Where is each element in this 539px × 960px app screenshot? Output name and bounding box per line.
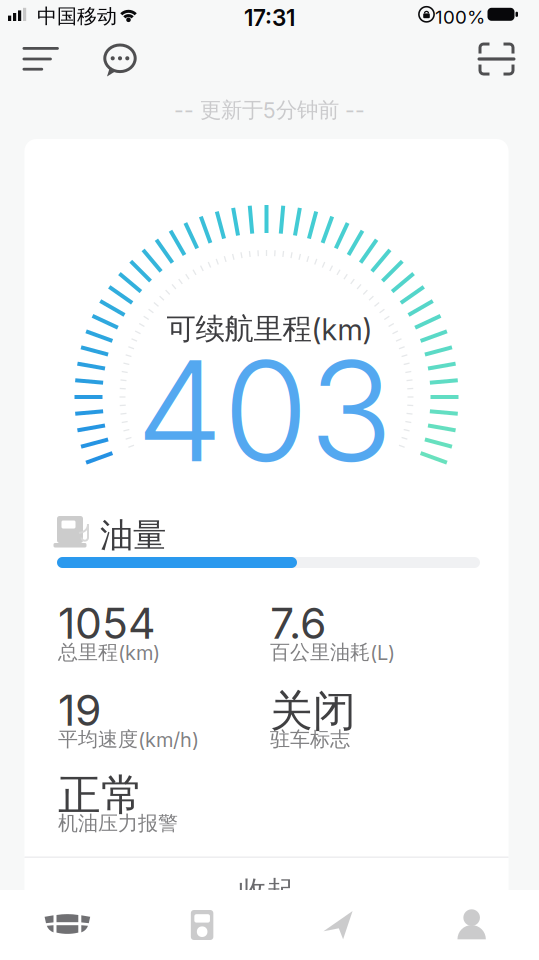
staticText: 7.6 [270, 598, 326, 648]
staticText: 100% [435, 6, 485, 28]
staticText: -- 更新于5分钟前 -- [174, 97, 365, 123]
staticText: 驻车标志 [270, 727, 350, 752]
staticText: 17:31 [244, 4, 295, 31]
staticText: 19 [58, 685, 101, 735]
staticText: 总里程(km) [58, 640, 160, 665]
button[interactable]: Messages [98, 38, 142, 82]
staticText: 403 [136, 329, 393, 493]
staticText: 平均速度(km/h) [58, 727, 199, 752]
staticText: 可续航里程(km) [166, 311, 372, 347]
button[interactable]: Menu [12, 34, 70, 80]
staticText: 中国移动 [37, 4, 117, 29]
button[interactable]: Remote control [135, 890, 270, 960]
staticText: 油量 [100, 515, 166, 556]
staticText: 机油压力报警 [58, 811, 178, 836]
button[interactable]: Profile [404, 890, 539, 960]
staticText: 百公里油耗(L) [270, 640, 395, 665]
staticText: 收起 [238, 874, 294, 908]
button[interactable]: Navigation [269, 890, 404, 960]
staticText: 关闭 [270, 685, 356, 737]
button[interactable]: Scan [470, 36, 524, 82]
staticText: 正常 [58, 769, 144, 821]
staticText: 1054 [58, 598, 156, 648]
button[interactable]: 收起 [216, 874, 316, 908]
button[interactable]: Vehicle status [0, 890, 135, 960]
